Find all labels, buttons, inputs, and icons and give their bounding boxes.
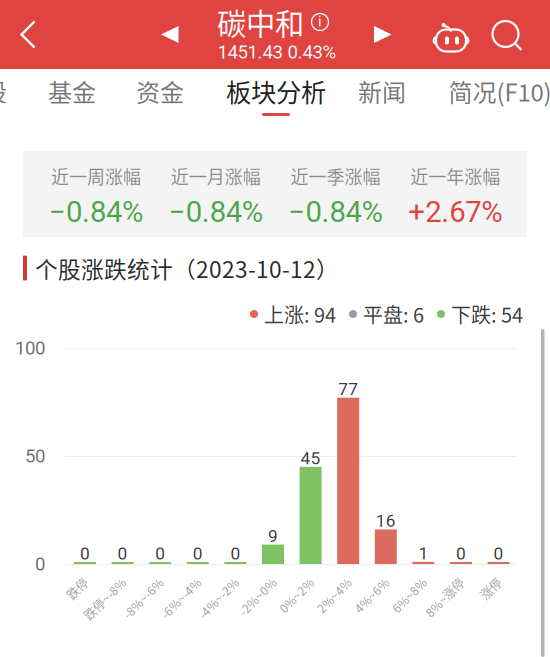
staticText: 简况(F10) <box>448 74 550 108</box>
staticText: 基金 <box>48 74 96 108</box>
staticText: 0 <box>35 553 45 575</box>
staticText: +2.67% <box>408 195 502 229</box>
staticText: 个股 <box>0 74 7 108</box>
button[interactable]: 基金 <box>17 69 127 124</box>
staticText: 1 <box>418 543 428 563</box>
staticText: −0.84% <box>169 195 263 229</box>
staticText: -2%~0% <box>227 571 274 589</box>
staticText: 0%~2% <box>269 571 312 589</box>
button[interactable]: Search <box>482 2 534 71</box>
staticText: 4%~6% <box>344 571 387 589</box>
button[interactable]: AI assistant <box>425 2 477 71</box>
button[interactable]: Previous sector <box>148 0 192 69</box>
staticText: 0 <box>80 543 90 564</box>
staticText: 6%~8% <box>381 571 424 589</box>
staticText: 77 <box>338 379 358 399</box>
staticText: 45 <box>301 448 321 468</box>
button[interactable]: 简况(F10) <box>445 69 550 124</box>
staticText: 下跌: 54 <box>451 299 523 328</box>
staticText: 50 <box>25 445 45 467</box>
staticText: i <box>318 13 322 30</box>
staticText: 个股涨跌统计（2023-10-12） <box>35 252 339 284</box>
staticText: 0 <box>193 543 203 564</box>
staticText: −0.84% <box>49 195 143 229</box>
staticText: 近一周涨幅 <box>51 163 141 189</box>
staticText: 0 <box>230 543 240 564</box>
staticText: -8%~-6% <box>110 571 161 589</box>
staticText: 板块分析 <box>226 73 326 109</box>
staticText: 1451.43 0.43% <box>217 41 336 63</box>
staticText: 近一季涨幅 <box>290 163 380 189</box>
staticText: 近一年涨幅 <box>410 163 500 189</box>
staticText: -6%~-4% <box>148 571 199 589</box>
staticText: 涨停 <box>476 571 500 589</box>
button[interactable]: 资金 <box>105 69 215 124</box>
staticText: -4%~-2% <box>185 571 236 589</box>
staticText: 0 <box>118 543 128 564</box>
staticText: 新闻 <box>358 74 406 108</box>
staticText: 上涨: 94 <box>264 299 336 328</box>
button[interactable]: 板块分析 <box>221 69 331 124</box>
staticText: 跌停~-8% <box>71 571 124 589</box>
button[interactable]: 新闻 <box>327 69 437 124</box>
button[interactable]: 个股 <box>0 69 38 124</box>
staticText: 碳中和 <box>217 1 304 43</box>
staticText: 平盘: 6 <box>363 299 424 328</box>
staticText: 100 <box>15 337 45 359</box>
staticText: 9 <box>268 526 278 546</box>
staticText: 8%~涨停 <box>413 571 462 589</box>
staticText: 近一月涨幅 <box>171 163 261 189</box>
button[interactable]: Back <box>0 0 56 69</box>
staticText: 0 <box>155 543 165 564</box>
staticText: 资金 <box>136 74 184 108</box>
staticText: 0 <box>456 543 466 564</box>
staticText: 0 <box>494 543 504 564</box>
staticText: 2%~4% <box>306 571 349 589</box>
staticText: −0.84% <box>288 195 382 229</box>
staticText: 跌停 <box>62 571 86 589</box>
button[interactable]: Next sector <box>361 0 405 69</box>
staticText: 16 <box>376 511 396 531</box>
